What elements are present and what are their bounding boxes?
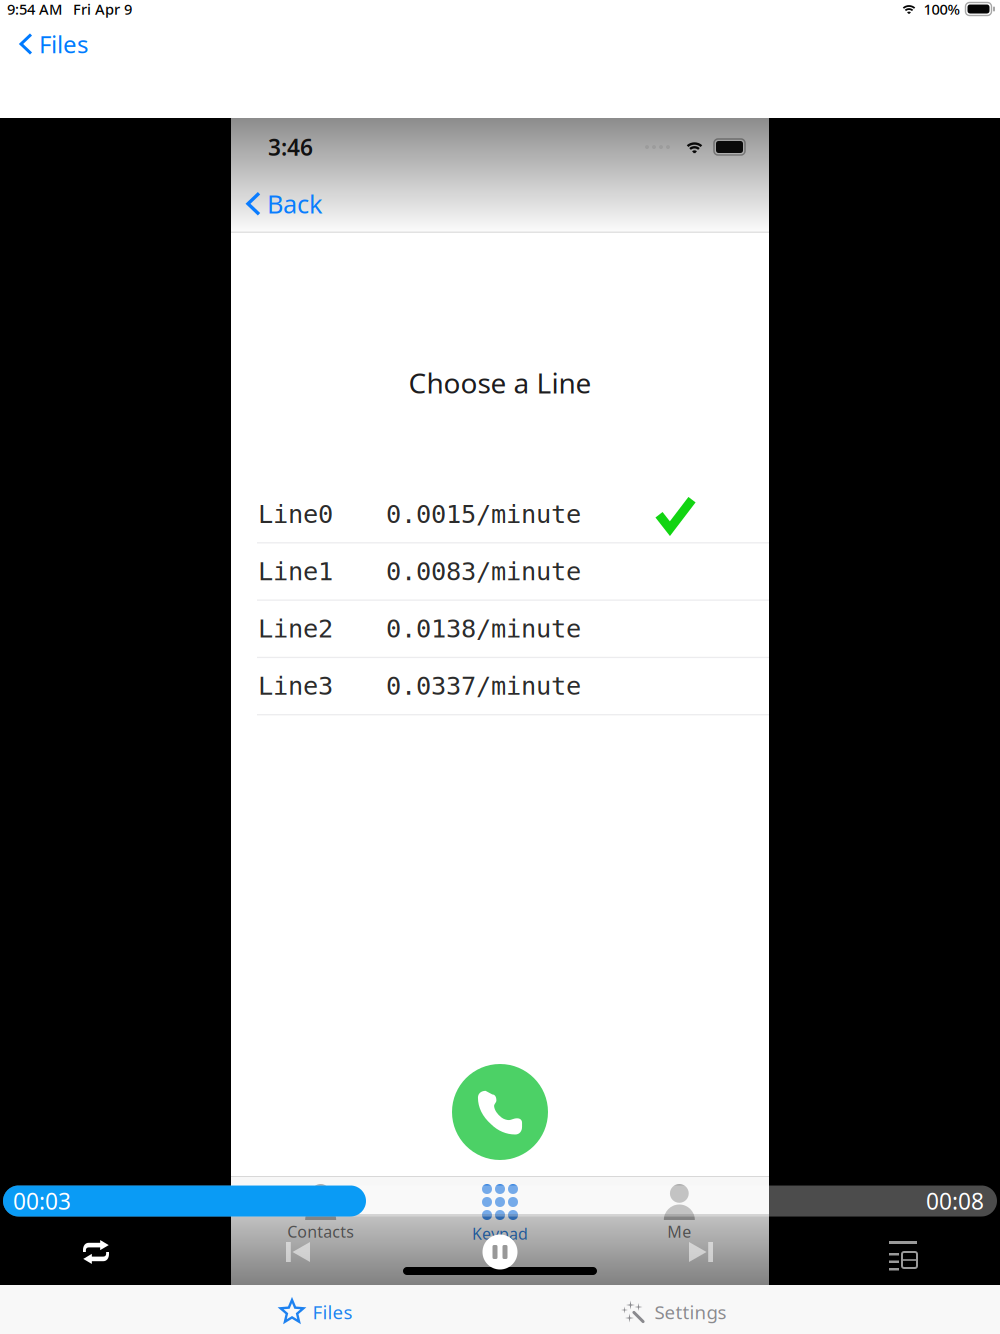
staticText: 0.0083/minute — [386, 557, 581, 586]
button[interactable]: Pause — [476, 1228, 523, 1275]
button[interactable]: Line0 — [231, 486, 769, 542]
button[interactable]: Previous — [272, 1228, 324, 1276]
button[interactable]: Files — [269, 1290, 362, 1334]
button[interactable]: Next — [675, 1228, 727, 1276]
staticText: 0.0337/minute — [386, 672, 581, 700]
staticText: Line2 — [258, 614, 333, 643]
staticText: Settings — [654, 1300, 726, 1324]
staticText: Contacts — [287, 1221, 354, 1242]
button[interactable]: Me — [590, 1184, 769, 1242]
button[interactable]: Line2 — [231, 601, 769, 657]
button[interactable]: Line3 — [231, 658, 769, 714]
button[interactable]: Files — [0, 15, 110, 73]
button[interactable]: Keypad — [410, 1182, 590, 1244]
button[interactable]: Settings — [611, 1290, 736, 1334]
staticText: Files — [312, 1300, 352, 1324]
staticText: Line1 — [258, 557, 333, 586]
staticText: 00:08 — [926, 1186, 984, 1216]
staticText: 9:54 AM — [7, 0, 62, 19]
button[interactable]: Back — [231, 181, 323, 226]
staticText: Me — [667, 1221, 691, 1242]
staticText: Fri Apr 9 — [73, 0, 132, 19]
button[interactable]: Chapters — [875, 1227, 931, 1277]
staticText: Files — [39, 28, 88, 60]
staticText: Choose a Line — [408, 364, 591, 401]
staticText: 0.0138/minute — [386, 614, 581, 643]
staticText: Back — [267, 187, 323, 220]
staticText: Keypad — [472, 1223, 528, 1244]
button[interactable]: Line1 — [231, 543, 769, 599]
staticText: 00:03 — [13, 1186, 71, 1216]
staticText: Line3 — [258, 672, 333, 700]
staticText: 100% — [923, 0, 959, 19]
button[interactable]: Repeat — [69, 1226, 123, 1277]
button[interactable]: Call — [452, 1064, 548, 1160]
staticText: 3:46 — [268, 132, 313, 162]
staticText: Line0 — [258, 500, 333, 529]
button[interactable]: Contacts — [231, 1184, 410, 1242]
staticText: 0.0015/minute — [386, 500, 581, 529]
